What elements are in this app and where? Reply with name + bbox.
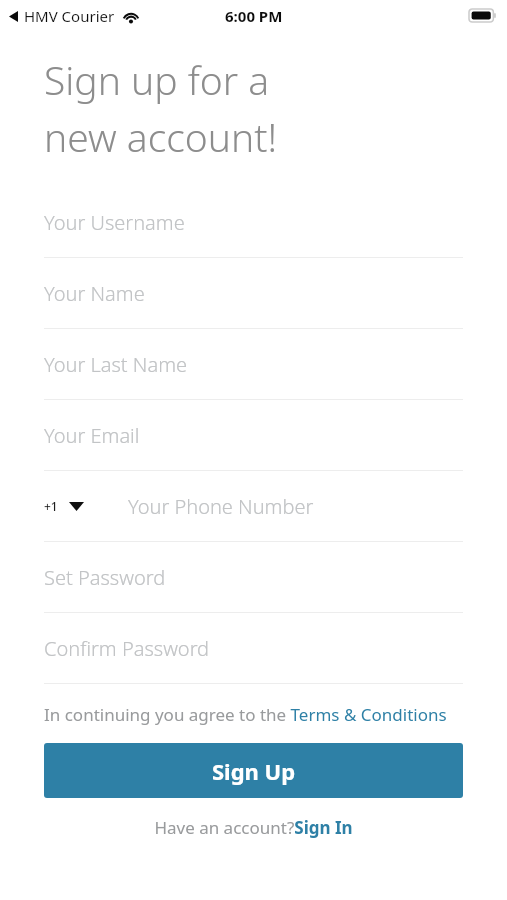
staticText: Your Last Name — [44, 351, 188, 378]
button[interactable]: Your Username — [44, 187, 463, 258]
button[interactable]: Confirm Password — [44, 613, 463, 684]
staticText: Your Email — [44, 422, 140, 449]
button[interactable]: Set Password — [44, 542, 463, 613]
button[interactable]: Your Last Name — [44, 329, 463, 400]
staticText: Your Username — [44, 209, 185, 236]
staticText: Confirm Password — [44, 635, 210, 662]
staticText: Sign up for a — [44, 53, 270, 106]
button[interactable]: Have an account?Sign In — [154, 816, 353, 839]
button[interactable]: Select country calling code — [44, 471, 463, 542]
staticText: +1 — [44, 498, 58, 514]
staticText: Your Phone Number — [128, 493, 314, 520]
staticText: 6:00 PM — [225, 6, 283, 26]
button[interactable]: Sign Up — [44, 743, 463, 798]
staticText: Sign Up — [212, 756, 296, 786]
staticText: new account! — [44, 110, 278, 163]
staticText: HMV Courier — [24, 6, 115, 26]
button[interactable]: Select country calling code — [44, 498, 84, 514]
button[interactable]: In continuing you agree to the Terms & C… — [44, 703, 463, 726]
staticText: Your Name — [44, 280, 145, 307]
staticText: Have an account?Sign In — [154, 816, 353, 839]
button[interactable]: Your Email — [44, 400, 463, 471]
staticText: In continuing you agree to the Terms & C… — [44, 703, 447, 726]
button[interactable]: Your Name — [44, 258, 463, 329]
staticText: Set Password — [44, 564, 166, 591]
